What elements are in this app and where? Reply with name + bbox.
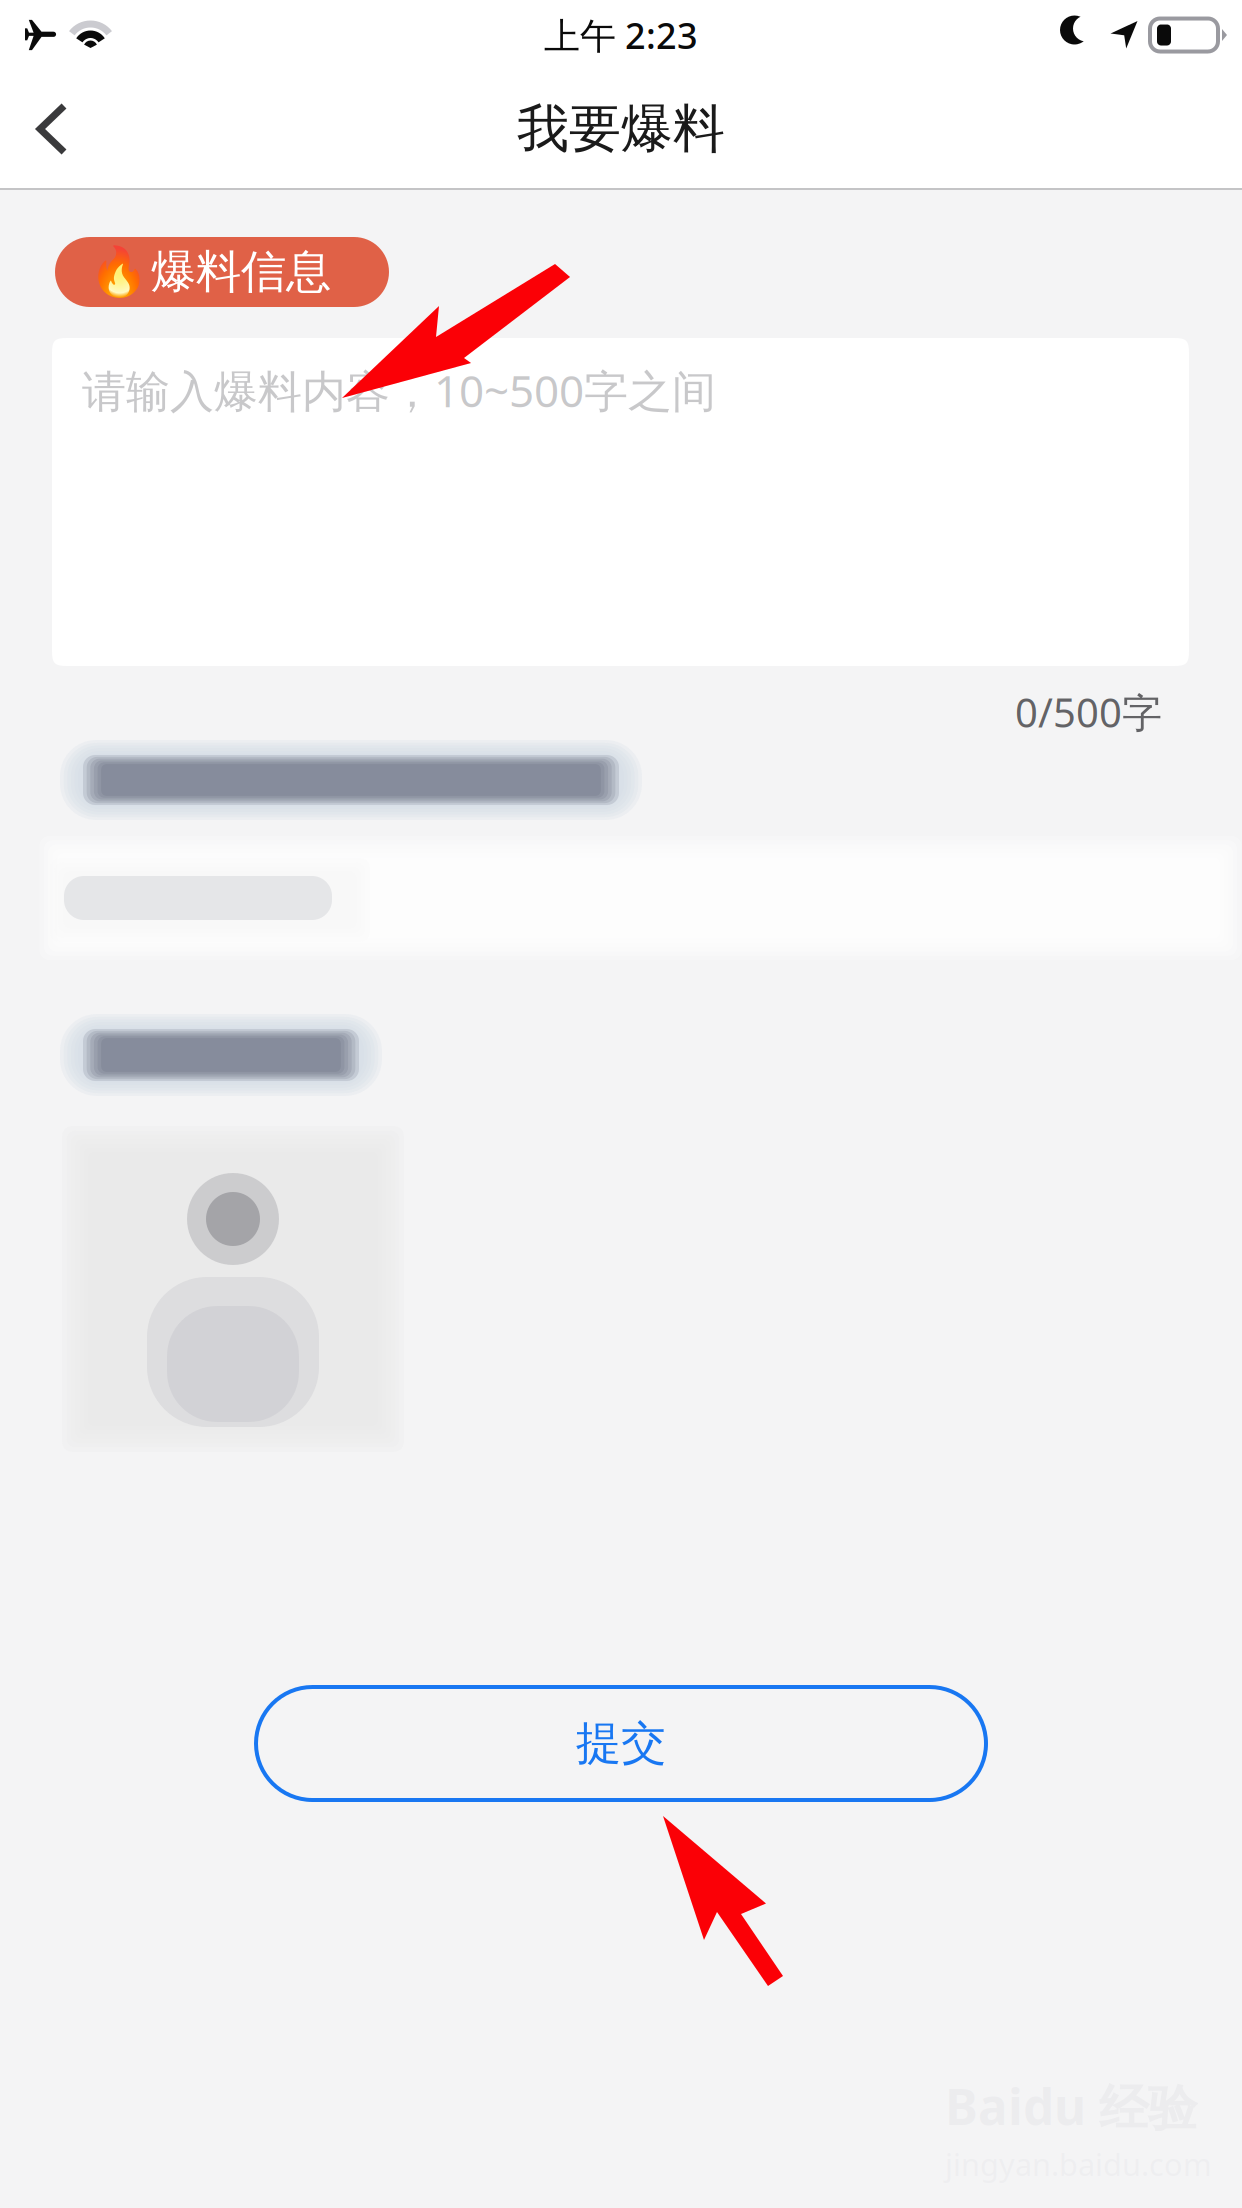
staticText: Baidu 经验	[945, 2073, 1197, 2139]
button[interactable]: 🔥	[55, 237, 389, 307]
staticText: 0/500字	[1015, 685, 1162, 738]
button[interactable]: 提交	[256, 1687, 986, 1800]
staticText: 提交	[576, 1716, 666, 1771]
staticText: 请输入爆料内容，10~500字之间	[82, 361, 716, 419]
staticText: 上午 2:23	[544, 11, 698, 59]
button[interactable]: 爆料内容输入框	[52, 338, 1189, 666]
button[interactable]: 返回	[0, 70, 120, 188]
staticText: 我要爆料	[517, 97, 725, 161]
staticText: 🔥	[89, 245, 149, 299]
staticText: 爆料信息	[151, 244, 331, 300]
